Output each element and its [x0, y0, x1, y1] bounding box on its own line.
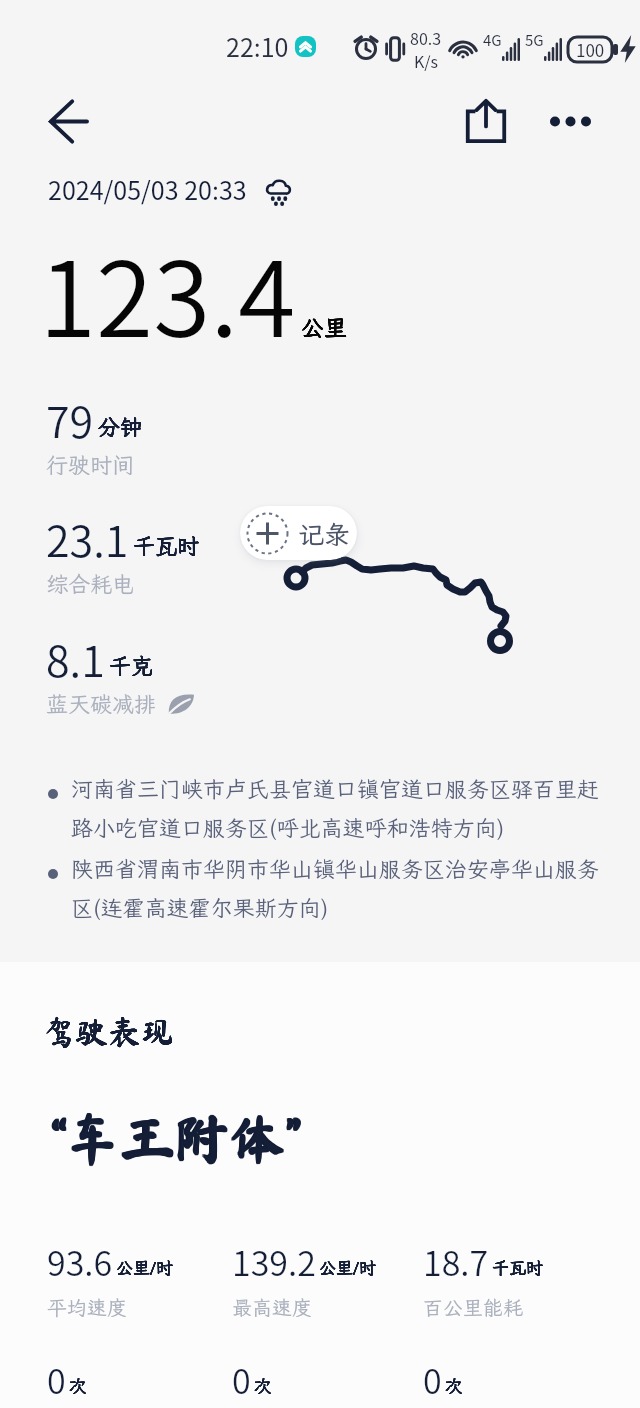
staticText: 次 — [445, 1374, 462, 1396]
staticText: 次 — [254, 1374, 271, 1396]
staticText: 公里/时 — [116, 1256, 173, 1278]
staticText: 0 — [423, 1355, 442, 1404]
staticText: 次 — [254, 1374, 271, 1396]
staticText: K/s — [414, 49, 439, 72]
staticText: 公里 — [301, 312, 347, 342]
staticText: “车王附体” — [50, 1110, 298, 1165]
staticText: 公里/时 — [116, 1256, 173, 1278]
staticText: 驾驶表现 — [42, 1015, 174, 1048]
staticText: 公里/时 — [116, 1256, 173, 1278]
staticText: 0 — [47, 1355, 66, 1404]
staticText: 驾驶表现 — [42, 1015, 174, 1048]
staticText: 千克 — [109, 651, 154, 680]
staticText: “车王附体” — [50, 1112, 298, 1167]
button[interactable]: More options — [538, 89, 602, 153]
staticText: 公里 — [301, 312, 347, 342]
staticText: 次 — [445, 1374, 462, 1396]
staticText: 陕西省渭南市华阴市华山镇华山服务区治安亭华山服务区(连霍高速霍尔果斯方向) — [71, 854, 608, 922]
staticText: 千瓦时 — [133, 531, 200, 560]
staticText: 次 — [445, 1374, 462, 1396]
staticText: 分钟 — [98, 412, 143, 441]
staticText: 驾驶表现 — [42, 1015, 174, 1048]
staticText: 千瓦时 — [133, 531, 200, 560]
staticText: 千瓦时 — [492, 1256, 543, 1278]
staticText: 行驶时间 — [46, 450, 135, 479]
staticText: 千瓦时 — [133, 531, 200, 560]
staticText: 分钟 — [98, 412, 143, 441]
staticText: 千瓦时 — [133, 531, 200, 560]
staticText: 0 — [232, 1355, 251, 1404]
staticText: 千克 — [109, 651, 154, 680]
staticText: 次 — [69, 1374, 86, 1396]
staticText: 分钟 — [98, 412, 143, 441]
staticText: 次 — [69, 1374, 86, 1396]
staticText: 千瓦时 — [492, 1256, 543, 1278]
staticText: 千瓦时 — [133, 531, 200, 560]
button[interactable]: Back — [36, 89, 100, 153]
staticText: 驾驶表现 — [42, 1015, 174, 1048]
staticText: 千瓦时 — [492, 1256, 543, 1278]
staticText: 分钟 — [98, 412, 143, 441]
staticText: 22:10 — [226, 28, 289, 64]
staticText: 公里/时 — [319, 1256, 376, 1278]
staticText: 千克 — [109, 651, 154, 680]
staticText: 分钟 — [98, 412, 143, 441]
staticText: 公里 — [301, 312, 347, 342]
staticText: 80.3 — [410, 26, 442, 49]
staticText: 次 — [445, 1374, 462, 1396]
staticText: 驾驶表现 — [42, 1015, 174, 1048]
staticText: 公里/时 — [319, 1256, 376, 1278]
staticText: 次 — [254, 1374, 271, 1396]
staticText: “车王附体” — [51, 1111, 299, 1166]
staticText: 次 — [445, 1374, 462, 1396]
button[interactable]: 记录 — [240, 506, 357, 560]
staticText: 次 — [69, 1374, 86, 1396]
staticText: 79 — [46, 388, 94, 450]
staticText: 23.1 — [46, 507, 129, 569]
staticText: 公里 — [301, 312, 347, 342]
staticText: 千克 — [109, 651, 154, 680]
staticText: 次 — [254, 1374, 271, 1396]
staticText: 驾驶表现 — [42, 1015, 174, 1048]
staticText: 记录 — [298, 517, 351, 551]
staticText: 千瓦时 — [492, 1256, 543, 1278]
staticText: 公里 — [301, 312, 347, 342]
staticText: 平均速度 — [47, 1294, 127, 1320]
staticText: 千瓦时 — [492, 1256, 543, 1278]
staticText: 公里 — [301, 312, 347, 342]
staticText: 千瓦时 — [492, 1256, 543, 1278]
staticText: 次 — [254, 1374, 271, 1396]
staticText: 次 — [254, 1374, 271, 1396]
staticText: “车王附体” — [51, 1110, 299, 1165]
staticText: 次 — [254, 1374, 271, 1396]
staticText: 139.2 — [232, 1237, 316, 1286]
button[interactable]: Share — [454, 89, 518, 153]
staticText: 次 — [69, 1374, 86, 1396]
staticText: 公里/时 — [319, 1256, 376, 1278]
staticText: 公里/时 — [319, 1256, 376, 1278]
staticText: 千瓦时 — [492, 1256, 543, 1278]
staticText: 分钟 — [98, 412, 143, 441]
staticText: 千克 — [109, 651, 154, 680]
staticText: 公里/时 — [116, 1256, 173, 1278]
staticText: 驾驶表现 — [42, 1015, 174, 1048]
staticText: 2024/05/03 20:33 — [48, 171, 247, 207]
staticText: “车王附体” — [52, 1111, 300, 1166]
staticText: 公里/时 — [319, 1256, 376, 1278]
staticText: 公里 — [301, 312, 347, 342]
staticText: 次 — [445, 1374, 462, 1396]
staticText: 公里/时 — [319, 1256, 376, 1278]
staticText: 分钟 — [98, 412, 143, 441]
staticText: 5G — [525, 29, 544, 51]
staticText: 公里/时 — [319, 1256, 376, 1278]
staticText: 千瓦时 — [133, 531, 200, 560]
staticText: 千瓦时 — [133, 531, 200, 560]
staticText: 4G — [483, 29, 502, 51]
staticText: 公里/时 — [319, 1256, 376, 1278]
staticText: 千克 — [109, 651, 154, 680]
staticText: 千瓦时 — [133, 531, 200, 560]
staticText: “车王附体” — [52, 1110, 300, 1165]
staticText: 驾驶表现 — [42, 1015, 174, 1048]
staticText: 千克 — [109, 651, 154, 680]
staticText: 公里 — [301, 312, 347, 342]
